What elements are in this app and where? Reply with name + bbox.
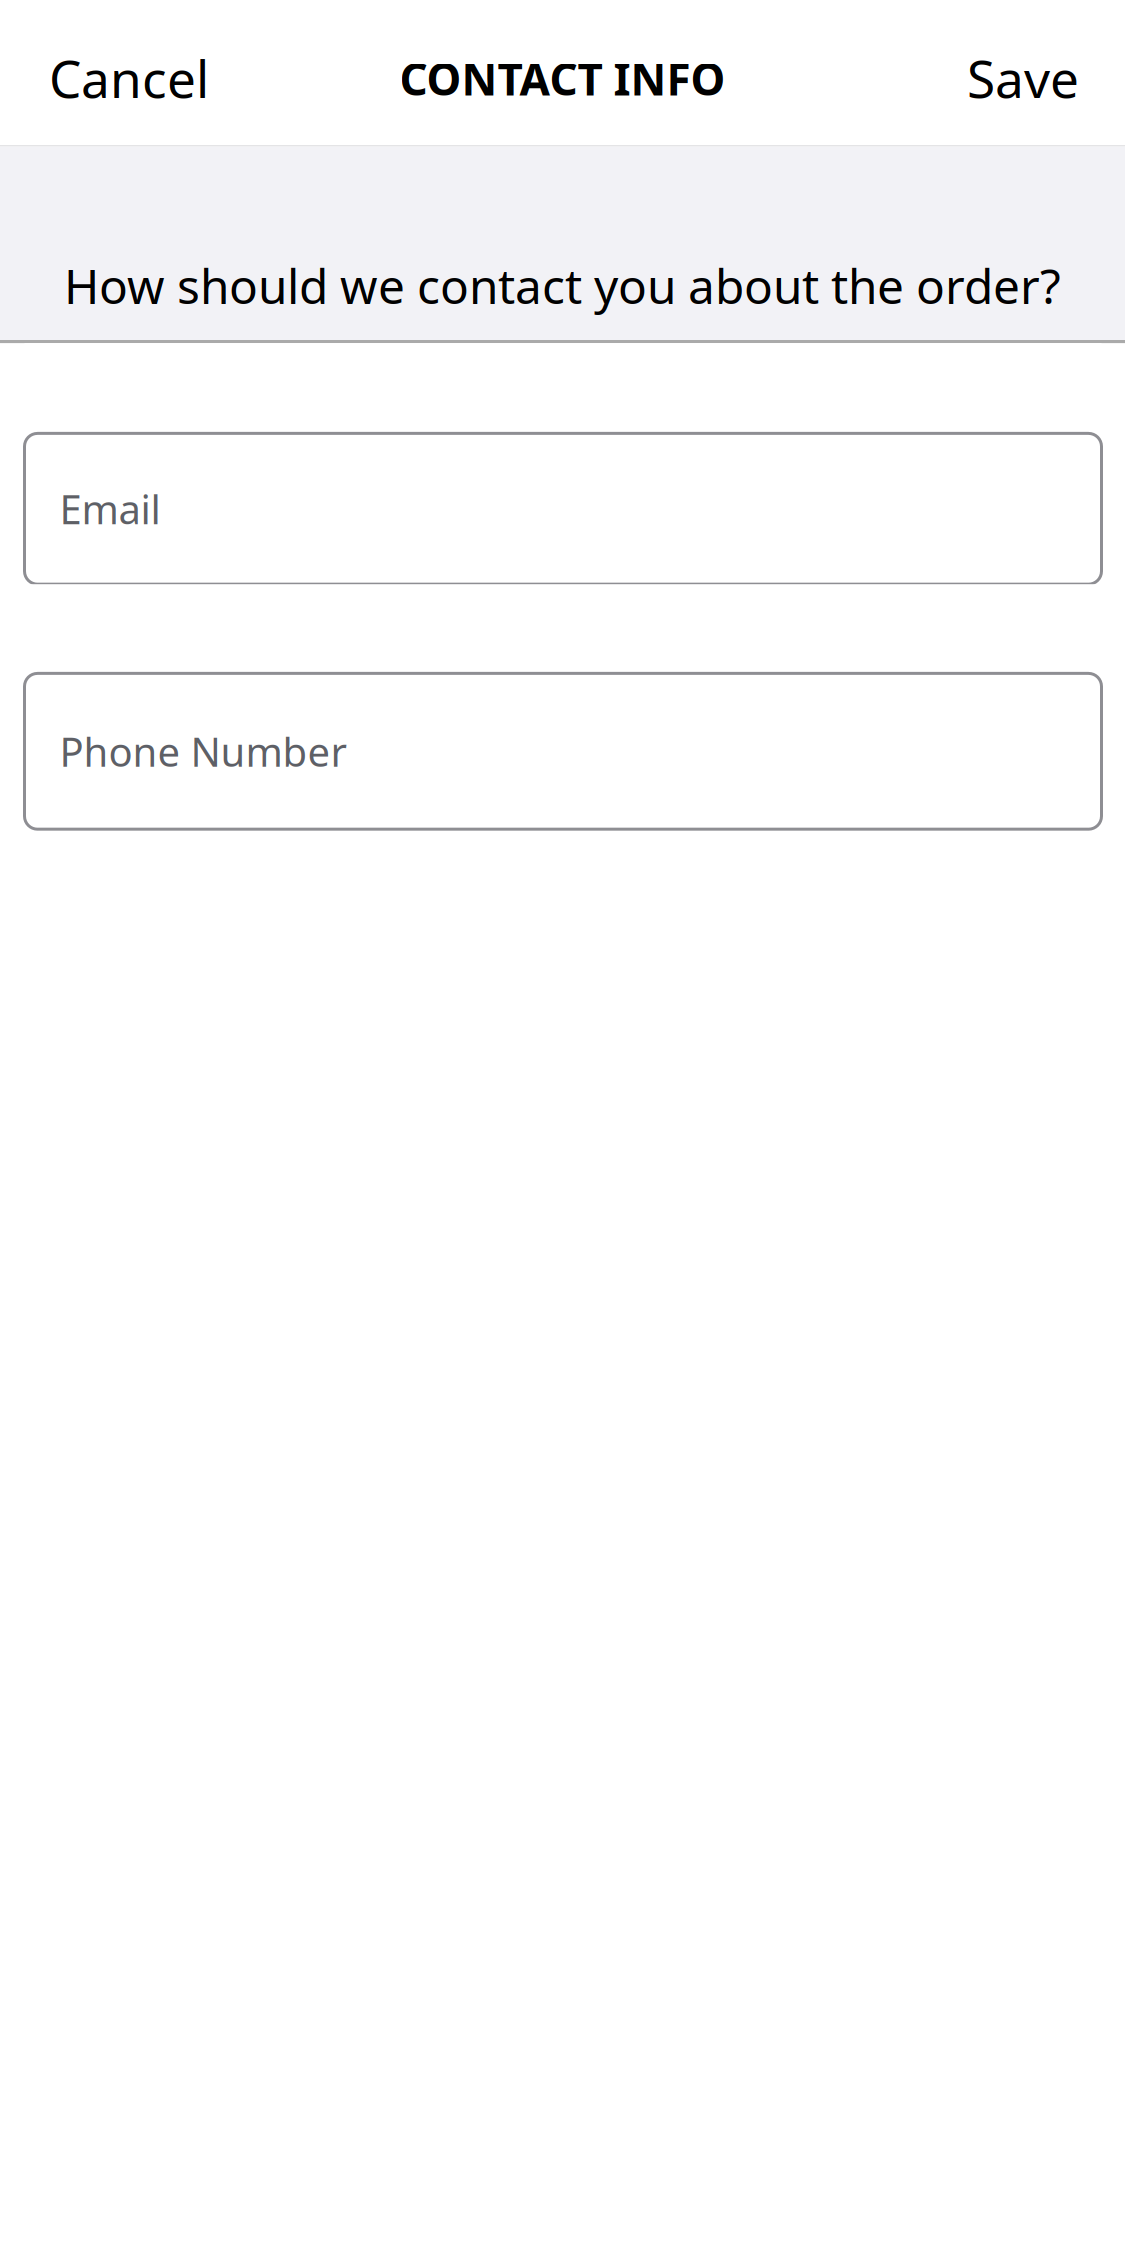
staticText: How should we contact you about the orde… [64, 253, 1061, 318]
button[interactable]: Save [943, 0, 1125, 145]
button[interactable]: Phone Number [24, 673, 1101, 829]
staticText: Phone Number [59, 724, 347, 779]
staticText: Cancel [49, 43, 209, 113]
staticText: Email [59, 482, 160, 536]
button[interactable]: Email [24, 433, 1101, 584]
staticText: Save [967, 43, 1079, 113]
staticText: CONTACT INFO [399, 48, 725, 108]
button[interactable]: Cancel [0, 0, 233, 145]
